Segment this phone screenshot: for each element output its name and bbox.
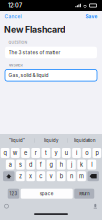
button[interactable]: o [82,148,91,158]
button[interactable]: Cancel [0,11,21,22]
staticText: m [79,173,84,180]
button[interactable]: liquidy [34,134,67,147]
staticText: s [19,161,22,168]
button[interactable]: Emoji [0,202,9,211]
button[interactable]: y [52,148,60,158]
button[interactable]: The 3 states of matter [0,47,102,58]
staticText: u [65,150,68,156]
button[interactable]: b [57,171,65,181]
staticText: p [95,150,98,156]
staticText: f [40,161,42,168]
button[interactable]: f [36,160,45,170]
staticText: e [24,150,27,156]
staticText: i [76,150,77,156]
staticText: ANSWER [8,63,22,67]
staticText: QUESTION [8,40,27,45]
staticText: o [85,150,88,156]
staticText: z [19,173,22,180]
button[interactable]: 123 [8,189,19,199]
button[interactable]: l [87,160,96,170]
button[interactable]: Save [85,11,102,22]
button[interactable]: g [47,160,55,170]
staticText: 123 [9,191,17,196]
button[interactable]: w [11,148,20,158]
button[interactable]: Delete [87,171,99,181]
staticText: Save [85,14,97,19]
button[interactable]: m [77,171,86,181]
button[interactable]: j [67,160,76,170]
button[interactable]: t [41,148,50,158]
button[interactable]: c [36,171,45,181]
button[interactable]: Shift [3,171,14,181]
button[interactable]: k [77,160,86,170]
button[interactable]: space [21,189,73,199]
staticText: "liquid" [9,138,25,143]
button[interactable]: return [74,189,94,199]
staticText: j [71,161,72,168]
staticText: New Flashcard [4,24,66,35]
staticText: a [9,161,12,168]
staticText: l [91,161,92,168]
staticText: v [49,173,52,180]
button[interactable]: d [26,160,35,170]
staticText: y [55,150,58,156]
staticText: liquidy [44,138,58,143]
button[interactable]: h [57,160,65,170]
staticText: h [60,161,63,168]
staticText: g [49,161,52,168]
staticText: r [35,150,37,156]
button[interactable]: v [47,171,55,181]
staticText: liquidation [74,138,96,143]
staticText: t [45,150,47,156]
button[interactable]: liquidation [68,134,102,147]
button[interactable]: r [31,148,40,158]
button[interactable]: s [16,160,25,170]
staticText: k [80,161,83,168]
staticText: 12:07 [8,2,22,9]
staticText: n [70,173,73,180]
staticText: q [4,150,7,156]
staticText: The 3 states of matter [9,50,61,55]
staticText: d [29,161,32,168]
staticText: return [79,191,89,196]
button[interactable]: a [6,160,14,170]
button[interactable]: u [62,148,71,158]
button[interactable]: Dictation [94,202,102,211]
button[interactable]: n [67,171,76,181]
staticText: c [39,173,42,180]
button[interactable]: x [26,171,35,181]
staticText: x [29,173,32,180]
button[interactable]: i [72,148,81,158]
button[interactable]: Gas, solid & liquid [0,69,102,81]
button[interactable]: "liquid" [0,134,34,147]
button[interactable]: z [16,171,25,181]
button[interactable]: q [1,148,9,158]
button[interactable]: p [93,148,101,158]
staticText: w [13,150,18,156]
staticText: Gas, solid & liquid [9,72,49,78]
staticText: space [40,191,54,196]
staticText: Cancel [4,14,21,19]
staticText: b [60,173,63,180]
button[interactable]: e [21,148,30,158]
